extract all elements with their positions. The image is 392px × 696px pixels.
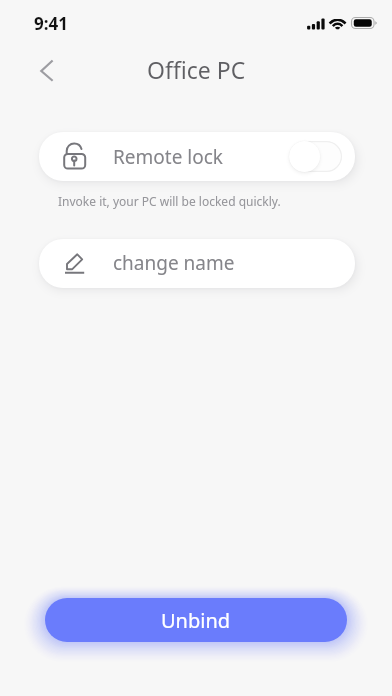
button[interactable]: Remote lock toggle	[289, 141, 342, 172]
staticText: 9:41	[34, 12, 68, 35]
button[interactable]: Unbind	[45, 598, 347, 642]
button[interactable]: Back	[26, 50, 68, 92]
staticText: Invoke it, your PC will be locked quickl…	[58, 193, 281, 209]
staticText: Remote lock	[113, 144, 223, 170]
button[interactable]: change name	[39, 239, 355, 288]
staticText: Unbind	[161, 607, 231, 634]
staticText: Office PC	[147, 54, 246, 85]
button[interactable]: Remote lock	[39, 132, 355, 181]
staticText: change name	[113, 250, 235, 276]
